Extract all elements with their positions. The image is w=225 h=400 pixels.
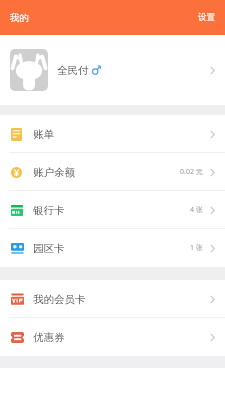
staticText: 账户余额: [33, 166, 75, 179]
staticText: 0.02 元: [180, 167, 203, 177]
button[interactable]: 账单: [0, 115, 225, 153]
button[interactable]: 园区卡: [0, 229, 225, 267]
button[interactable]: 账户余额: [0, 153, 225, 191]
staticText: 设置: [198, 12, 215, 23]
button[interactable]: 银行卡: [0, 191, 225, 229]
button[interactable]: 我的会员卡: [0, 280, 225, 318]
staticText: 4 张: [190, 205, 203, 215]
staticText: 优惠券: [33, 331, 65, 344]
staticText: 我的会员卡: [33, 293, 86, 306]
button[interactable]: 全民付: [0, 35, 225, 105]
staticText: 1 张: [190, 243, 203, 253]
staticText: 园区卡: [33, 242, 65, 255]
staticText: 账单: [33, 128, 54, 141]
staticText: 银行卡: [33, 204, 65, 217]
staticText: 我的: [10, 12, 29, 24]
button[interactable]: 优惠券: [0, 318, 225, 356]
staticText: 全民付: [57, 64, 89, 77]
button[interactable]: 设置: [188, 5, 225, 30]
